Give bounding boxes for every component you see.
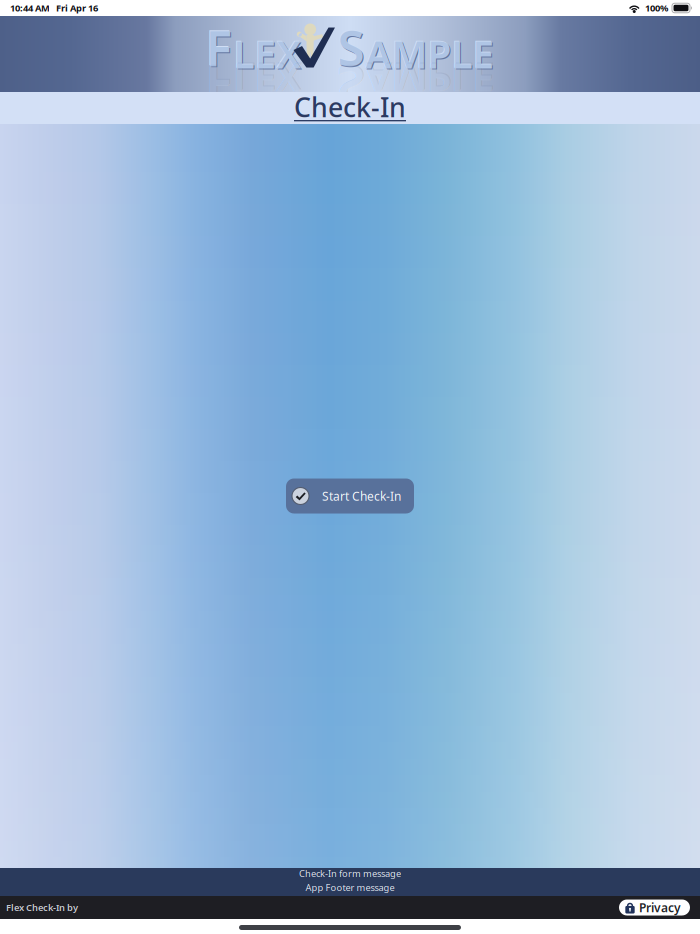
staticText: App Footer message <box>305 881 394 894</box>
staticText: AMPLE <box>365 28 494 79</box>
staticText: AMPLE <box>365 27 494 78</box>
staticText: S <box>337 13 364 79</box>
staticText: LEX <box>234 29 302 80</box>
staticText: Privacy <box>639 899 681 915</box>
staticText: S <box>338 53 365 119</box>
staticText: LEX <box>233 65 301 116</box>
staticText: Check-In form message <box>299 867 401 880</box>
staticText: LEX <box>233 66 301 117</box>
staticText: LEX <box>233 28 301 79</box>
staticText: S <box>337 51 364 117</box>
staticText: LEX <box>234 67 302 118</box>
staticText: F <box>206 15 233 81</box>
button[interactable]: Privacy <box>619 899 690 915</box>
staticText: AMPLE <box>366 67 495 118</box>
staticText: F <box>205 14 232 80</box>
staticText: Start Check-In <box>322 488 401 504</box>
staticText: S <box>338 15 365 81</box>
staticText: 10:44 AM <box>10 2 50 14</box>
staticText: LEX <box>233 27 301 78</box>
staticText: F <box>206 53 233 119</box>
button[interactable]: Start Check-In <box>286 478 414 513</box>
staticText: Check-In <box>294 89 406 125</box>
staticText: AMPLE <box>365 65 494 116</box>
staticText: F <box>205 51 232 117</box>
staticText: AMPLE <box>365 66 494 117</box>
staticText: F <box>205 52 232 118</box>
staticText: Flex Check-In by <box>6 901 78 914</box>
staticText: AMPLE <box>366 29 495 80</box>
staticText: S <box>337 14 364 80</box>
staticText: S <box>337 52 364 118</box>
staticText: F <box>205 13 232 79</box>
staticText: 100% <box>645 2 668 14</box>
staticText: Fri Apr 16 <box>56 2 98 14</box>
